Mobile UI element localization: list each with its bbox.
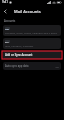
staticText: Auto-sync app data xyxy=(5,64,29,68)
button[interactable]: Add or Sync Account xyxy=(3,51,61,59)
staticText: On xyxy=(55,65,59,68)
staticText: Add or Sync Account xyxy=(5,53,33,57)
staticText: Mail Accounts xyxy=(14,9,41,14)
staticText: Mail, Contacts, Calendar xyxy=(5,44,34,47)
staticText: 9:41 xyxy=(2,0,8,4)
staticText: Contacts, Drive, Gmail, Calendar and 3 m… xyxy=(5,31,57,34)
button[interactable]: Auto-sync app data xyxy=(3,62,61,70)
button[interactable]: Email xyxy=(3,38,61,49)
button[interactable]: Back xyxy=(1,7,10,16)
button[interactable]: Gmail xyxy=(3,25,61,36)
staticText: Accounts xyxy=(4,19,16,23)
staticText: Gmail xyxy=(5,27,10,30)
staticText: Email xyxy=(5,40,10,43)
